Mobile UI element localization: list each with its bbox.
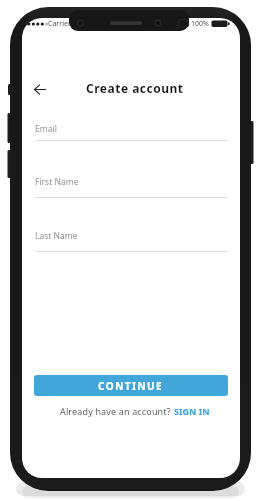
button[interactable]: First Name	[22, 174, 240, 199]
staticText: CONTINUE	[98, 379, 164, 393]
button[interactable]: Email	[22, 121, 240, 142]
staticText: Last Name	[35, 230, 78, 242]
button[interactable]	[30, 80, 50, 98]
staticText: First Name	[35, 176, 79, 188]
staticText: SIGN IN	[174, 405, 210, 417]
button[interactable]: CONTINUE	[34, 375, 228, 396]
staticText: Already have an account?	[60, 405, 174, 417]
staticText: Carrier	[48, 19, 71, 29]
button[interactable]: SIGN IN	[174, 405, 210, 417]
staticText: Create account	[86, 80, 184, 96]
button[interactable]: Last Name	[22, 228, 240, 253]
staticText: 100%	[191, 19, 209, 29]
staticText: Email	[35, 123, 57, 135]
